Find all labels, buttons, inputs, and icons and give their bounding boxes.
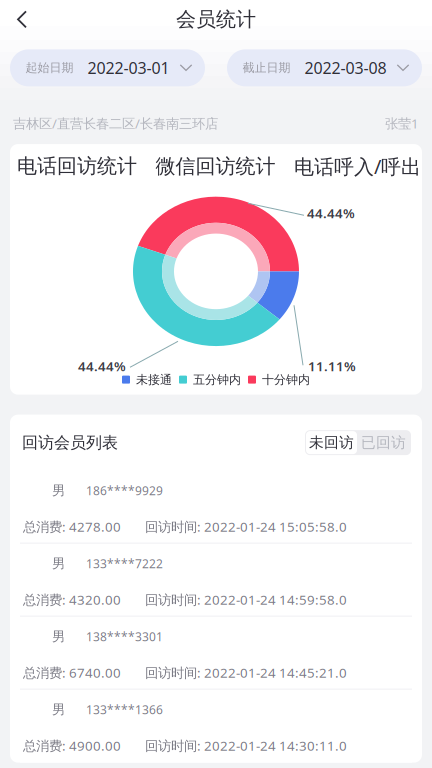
- staticText: 微信回访统计: [155, 154, 275, 179]
- staticText: 11.11%: [308, 357, 356, 375]
- staticText: 186****9929: [86, 483, 163, 499]
- staticText: 男: [52, 701, 65, 718]
- staticText: 2022-03-01: [87, 57, 169, 78]
- staticText: 未接通: [136, 372, 172, 387]
- button[interactable]: 已回访: [357, 431, 410, 454]
- button[interactable]: 男: [10, 690, 422, 763]
- button[interactable]: 男: [10, 617, 422, 690]
- staticText: 回访时间: 2022-01-24 14:30:11.0: [145, 737, 347, 754]
- button[interactable]: 电话呼入/呼出: [294, 153, 421, 189]
- staticText: 男: [52, 555, 65, 572]
- staticText: 133****1366: [86, 702, 163, 718]
- button[interactable]: 截止日期: [227, 49, 422, 86]
- staticText: 五分钟内: [193, 372, 241, 387]
- staticText: 起始日期: [25, 60, 73, 75]
- button[interactable]: 返回: [0, 0, 44, 41]
- staticText: 男: [52, 628, 65, 645]
- staticText: 吉林区/直营长春二区/长春南三环店: [13, 114, 218, 132]
- staticText: 会员统计: [176, 7, 256, 32]
- staticText: 回访时间: 2022-01-24 14:59:58.0: [145, 591, 347, 608]
- button[interactable]: 微信回访统计: [155, 154, 275, 188]
- staticText: 44.44%: [307, 204, 355, 222]
- staticText: 电话回访统计: [17, 154, 137, 178]
- staticText: 总消费: 6740.00: [23, 664, 121, 681]
- staticText: 张莹1: [385, 114, 419, 132]
- staticText: 十分钟内: [262, 372, 310, 387]
- staticText: 回访会员列表: [22, 433, 118, 452]
- staticText: 电话呼入/呼出: [294, 153, 421, 180]
- button[interactable]: 未回访: [306, 431, 357, 454]
- staticText: 回访时间: 2022-01-24 14:45:21.0: [145, 664, 347, 681]
- staticText: 男: [52, 482, 65, 499]
- button[interactable]: 电话回访统计: [17, 154, 137, 188]
- staticText: 未回访: [309, 434, 354, 452]
- button[interactable]: 起始日期: [10, 49, 205, 86]
- staticText: 总消费: 4278.00: [23, 518, 121, 535]
- button[interactable]: 男: [10, 544, 422, 617]
- staticText: 总消费: 4900.00: [23, 737, 121, 754]
- staticText: 2022-03-08: [304, 57, 386, 78]
- staticText: 133****7222: [86, 556, 163, 572]
- staticText: 44.44%: [78, 357, 126, 375]
- staticText: 截止日期: [242, 60, 290, 75]
- staticText: 回访时间: 2022-01-24 15:05:58.0: [145, 518, 347, 535]
- staticText: 已回访: [361, 434, 406, 452]
- button[interactable]: 男: [10, 471, 422, 544]
- staticText: 138****3301: [86, 629, 163, 645]
- staticText: 总消费: 4320.00: [23, 591, 121, 608]
